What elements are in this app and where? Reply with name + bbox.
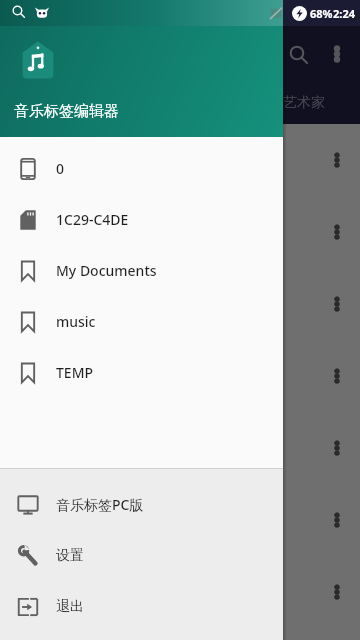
staticText: 68% bbox=[310, 6, 333, 21]
button[interactable]: music bbox=[0, 296, 283, 347]
staticText: 2:24 bbox=[333, 6, 355, 21]
button[interactable] bbox=[0, 196, 360, 268]
button[interactable]: 0 bbox=[0, 143, 283, 194]
button[interactable]: More options bbox=[322, 39, 352, 69]
button[interactable]: Search bbox=[281, 37, 315, 71]
staticText: TEMP bbox=[56, 363, 94, 382]
button[interactable] bbox=[0, 340, 360, 412]
button[interactable]: 音乐标签编辑器 bbox=[0, 26, 283, 137]
button[interactable] bbox=[0, 124, 360, 196]
staticText: 音乐标签编辑器 bbox=[14, 102, 119, 121]
button[interactable] bbox=[0, 268, 360, 340]
button[interactable]: 退出 bbox=[0, 581, 283, 632]
staticText: 0 bbox=[56, 159, 65, 178]
button[interactable] bbox=[0, 412, 360, 484]
staticText: music bbox=[56, 312, 96, 331]
staticText: 1C29-C4DE bbox=[56, 210, 129, 229]
button[interactable]: 1C29-C4DE bbox=[0, 194, 283, 245]
button[interactable] bbox=[0, 556, 360, 628]
staticText: 退出 bbox=[56, 598, 84, 616]
button[interactable]: My Documents bbox=[0, 245, 283, 296]
button[interactable]: 设置 bbox=[0, 530, 283, 581]
staticText: 音乐标签PC版 bbox=[56, 495, 144, 514]
button[interactable]: 音乐标签PC版 bbox=[0, 479, 283, 530]
button[interactable]: 艺术家 bbox=[283, 94, 325, 112]
staticText: 设置 bbox=[56, 547, 84, 565]
button[interactable]: TEMP bbox=[0, 347, 283, 398]
staticText: My Documents bbox=[56, 261, 157, 280]
button[interactable] bbox=[0, 484, 360, 556]
